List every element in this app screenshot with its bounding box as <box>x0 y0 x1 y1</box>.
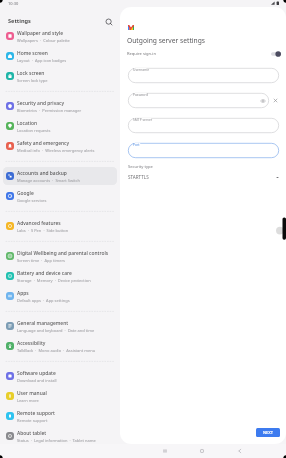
staticText: Home screen <box>17 50 48 57</box>
button[interactable]: Home <box>196 445 208 457</box>
button[interactable]: Remote support <box>3 407 117 425</box>
button[interactable]: Safety and emergency <box>3 137 117 155</box>
staticText: Location <box>17 120 38 127</box>
button[interactable]: Port <box>128 143 279 158</box>
staticText: Security type <box>128 164 153 170</box>
staticText: Biometrics · Permission manager <box>17 108 82 113</box>
button[interactable]: Back <box>234 445 246 457</box>
button[interactable]: General management <box>3 317 117 335</box>
staticText: Outgoing server settings <box>127 36 206 45</box>
staticText: Settings <box>8 17 31 25</box>
button[interactable]: User manual <box>3 387 117 405</box>
staticText: Location requests <box>17 128 51 133</box>
staticText: Manage accounts · Smart Switch <box>17 178 80 183</box>
staticText: Port <box>133 142 140 146</box>
staticText: NEXT <box>263 430 274 435</box>
button[interactable]: Location <box>3 117 117 135</box>
staticText: Require sign-in <box>127 51 156 57</box>
staticText: Layout · App icon badges <box>17 58 67 63</box>
staticText: Username <box>133 67 150 71</box>
button[interactable]: Password <box>128 93 269 108</box>
button[interactable]: Apps <box>3 287 117 305</box>
button[interactable]: Battery and device care <box>3 267 117 285</box>
staticText: Screen lock type <box>17 78 48 83</box>
staticText: STARTTLS <box>128 174 149 180</box>
staticText: TalkBack · Mono audio · Assistant menu <box>17 348 96 353</box>
staticText: Remote support <box>17 410 55 417</box>
staticText: Medical info · Wireless emergency alerts <box>17 148 95 153</box>
button[interactable]: Require sign-in <box>127 49 281 59</box>
staticText: SMTP server <box>133 117 153 121</box>
staticText: Battery and device care <box>17 270 72 277</box>
button[interactable]: Digital Wellbeing and parental controls <box>3 247 117 265</box>
staticText: Apps <box>17 290 29 297</box>
staticText: Accessibility <box>17 340 46 347</box>
button[interactable]: Clear <box>272 97 279 104</box>
button[interactable]: SMTP server <box>128 118 279 133</box>
staticText: Wallpaper and style <box>17 30 64 37</box>
button[interactable]: Home screen <box>3 47 117 65</box>
staticText: Advanced features <box>17 220 61 227</box>
staticText: General management <box>17 320 69 327</box>
staticText: Wallpapers · Colour palette <box>17 38 70 43</box>
staticText: Google <box>17 190 34 197</box>
staticText: Remote support <box>17 418 48 423</box>
staticText: Password <box>133 92 148 96</box>
button[interactable]: Accessibility <box>3 337 117 355</box>
button[interactable]: Software update <box>3 367 117 385</box>
staticText: Storage · Memory · Device protection <box>17 278 91 283</box>
staticText: Default apps · App settings <box>17 298 70 303</box>
staticText: Google services <box>17 198 47 203</box>
button[interactable]: Advanced features <box>3 217 117 235</box>
staticText: Security and privacy <box>17 100 65 107</box>
button[interactable]: Wallpaper and style <box>3 27 117 45</box>
staticText: Download and install <box>17 378 57 383</box>
staticText: Software update <box>17 370 56 377</box>
button[interactable]: Show password <box>260 98 266 104</box>
staticText: Digital Wellbeing and parental controls <box>17 250 109 257</box>
button[interactable]: STARTTLS <box>128 172 280 182</box>
button[interactable]: Accounts and backup <box>3 167 117 185</box>
button[interactable]: NEXT <box>256 428 280 437</box>
staticText: Learn more <box>17 398 39 403</box>
button[interactable]: Search <box>103 16 115 28</box>
button[interactable]: Lock screen <box>3 67 117 85</box>
button[interactable]: Google <box>3 187 117 205</box>
button[interactable]: Security and privacy <box>3 97 117 115</box>
button[interactable]: Recent apps <box>159 445 171 457</box>
staticText: Lock screen <box>17 70 45 77</box>
staticText: 10:30 <box>8 1 19 6</box>
staticText: Safety and emergency <box>17 140 70 147</box>
staticText: Status · Legal information · Tablet name <box>17 438 96 443</box>
staticText: Language and keyboard · Date and time <box>17 328 95 333</box>
button[interactable]: Edge panel <box>275 215 286 243</box>
staticText: About tablet <box>17 430 47 437</box>
staticText: Accounts and backup <box>17 170 67 177</box>
staticText: Labs · S Pen · Side button <box>17 228 69 233</box>
button[interactable]: About tablet <box>3 427 117 445</box>
button[interactable]: Username <box>128 68 279 83</box>
staticText: User manual <box>17 390 47 397</box>
staticText: Screen time · App timers <box>17 258 65 263</box>
